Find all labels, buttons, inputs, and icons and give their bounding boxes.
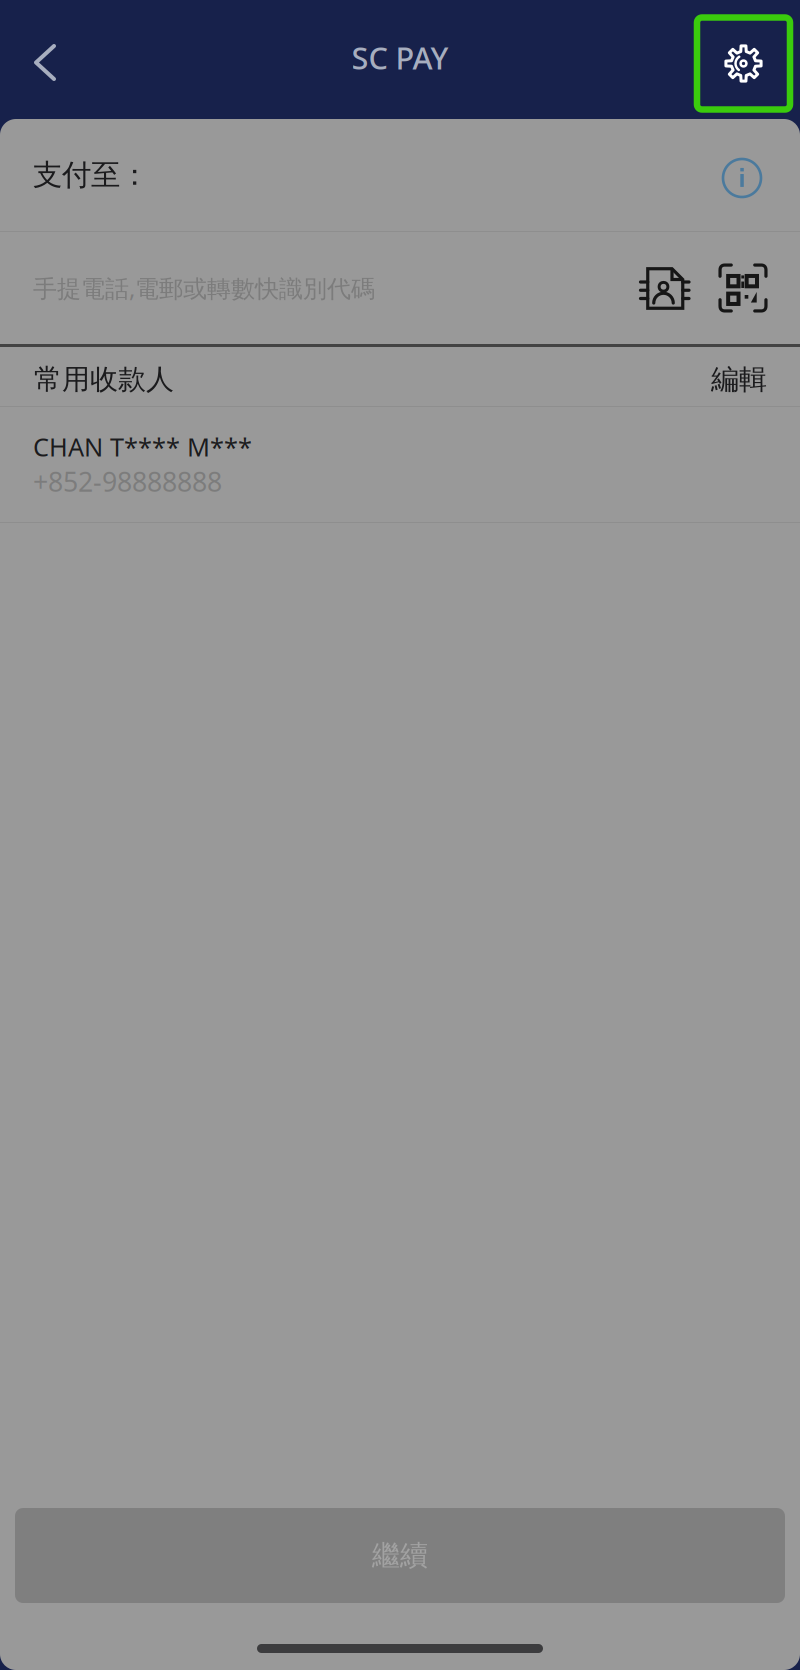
button[interactable]: Information (714, 147, 770, 203)
button[interactable]: Back (0, 9, 76, 109)
button[interactable]: Settings (698, 13, 791, 105)
staticText: 編輯 (711, 362, 767, 397)
staticText: +852-98888888 (33, 464, 222, 499)
staticText: 繼續 (372, 1538, 428, 1573)
staticText: SC PAY (351, 37, 448, 78)
button[interactable]: Choose from contacts (632, 257, 694, 319)
button[interactable]: Scan QR code (712, 257, 774, 319)
staticText: 手提電話,電郵或轉數快識別代碼 (33, 272, 375, 304)
staticText: CHAN T**** M*** (33, 430, 252, 464)
staticText: 常用收款人 (34, 362, 174, 397)
button[interactable]: 編輯 (681, 345, 767, 408)
staticText: 支付至： (33, 157, 149, 193)
button[interactable]: CHAN T**** M*** (0, 407, 800, 522)
